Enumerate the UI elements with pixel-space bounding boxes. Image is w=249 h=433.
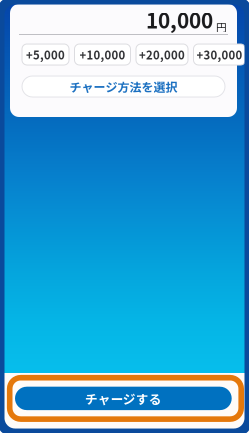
button[interactable]: +20,000 — [136, 44, 188, 65]
staticText: +30,000 — [196, 46, 242, 63]
button[interactable]: チャージする — [15, 387, 232, 410]
staticText: チャージする — [85, 389, 162, 407]
staticText: +5,000 — [26, 46, 65, 63]
staticText: チャージ方法を選択 — [69, 78, 177, 95]
staticText: +10,000 — [79, 46, 125, 63]
staticText: +20,000 — [139, 46, 185, 63]
staticText: 円 — [216, 19, 227, 34]
button[interactable]: +30,000 — [193, 44, 245, 65]
button[interactable]: +5,000 — [22, 44, 69, 65]
button[interactable]: チャージ方法を選択 — [22, 76, 225, 97]
staticText: 10,000 — [146, 4, 213, 34]
button[interactable]: +10,000 — [74, 44, 130, 65]
